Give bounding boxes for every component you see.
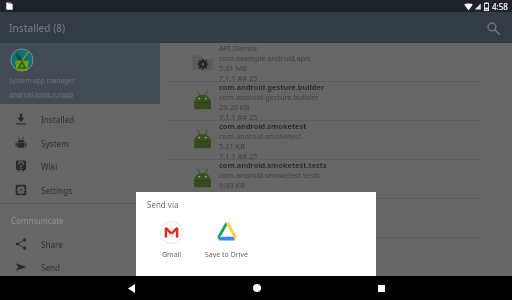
staticText: Settings <box>41 185 73 196</box>
button[interactable]: com.example.android.softkeyboard <box>0 277 512 300</box>
staticText: 7.1.1 ## 25 <box>219 151 258 159</box>
staticText: System app manager <box>9 76 75 85</box>
staticText: 7.1.1 ## 25 <box>219 190 258 198</box>
staticText: com.example.android.livecubes <box>219 248 329 258</box>
staticText: com.android.smoketest.tests <box>219 170 320 180</box>
staticText: Installed <box>41 114 75 125</box>
staticText: com.example.android.livecubes <box>219 238 336 248</box>
staticText: Send <box>41 262 60 273</box>
button[interactable]: com.android.speechrecorder <box>0 199 512 237</box>
staticText: com.android.gesture.builder <box>219 92 319 102</box>
button[interactable]: Send <box>0 255 160 279</box>
staticText: 7.1.1 ## 25 <box>219 73 258 81</box>
button[interactable]: Back <box>69 276 194 300</box>
button[interactable]: Search <box>483 18 503 38</box>
staticText: com.android.gesture.builder <box>219 82 325 92</box>
staticText: com.android.smoketest <box>219 131 302 141</box>
staticText: 29.20 KB <box>219 102 250 112</box>
staticText: 7.1.1 ## 25 <box>219 229 258 237</box>
button[interactable]: System <box>0 131 160 155</box>
staticText: 7.1.1 ## 25 <box>219 112 258 120</box>
button[interactable]: Share <box>0 232 160 256</box>
staticText: Save to Drive <box>205 250 248 260</box>
staticText: Installed (8) <box>9 21 66 35</box>
button[interactable]: Wiki <box>0 154 160 178</box>
button[interactable]: Recent apps <box>319 276 444 300</box>
staticText: com.android.smoketest <box>219 121 307 131</box>
button[interactable]: Gmail <box>144 221 199 263</box>
button[interactable]: com.android.smoketest <box>0 121 512 159</box>
staticText: Communicate <box>11 215 64 226</box>
button[interactable]: API Demos <box>0 43 512 81</box>
staticText: com.example.android.softkeyboard <box>219 287 343 297</box>
staticText: API Demos <box>219 43 258 53</box>
staticText: Wiki <box>41 161 58 172</box>
staticText: System <box>41 138 69 149</box>
button[interactable]: Installed <box>0 107 160 131</box>
staticText: 5.01 MB <box>219 63 248 73</box>
staticText: android-tools.ru/app <box>9 90 74 99</box>
staticText: Share <box>41 239 63 250</box>
button[interactable]: Home <box>194 276 319 300</box>
staticText: 15.2 KB <box>219 219 245 229</box>
staticText: Gmail <box>162 250 182 260</box>
button[interactable]: com.android.gesture.builder <box>0 82 512 120</box>
staticText: com.example.android.softkeyboard <box>219 277 350 287</box>
staticText: 4:58 <box>492 1 508 12</box>
staticText: 5.21 KB <box>219 141 245 151</box>
staticText: com.android.smoketest.tests <box>219 160 327 170</box>
staticText: 9.93 KB <box>219 180 245 190</box>
button[interactable]: com.example.android.livecubes <box>0 238 512 276</box>
staticText: Send via <box>147 199 179 210</box>
button[interactable]: Settings <box>0 178 160 202</box>
button[interactable]: Save to Drive <box>199 221 254 263</box>
button[interactable]: com.android.smoketest.tests <box>0 160 512 198</box>
staticText: com.example.android.apis <box>219 53 311 63</box>
